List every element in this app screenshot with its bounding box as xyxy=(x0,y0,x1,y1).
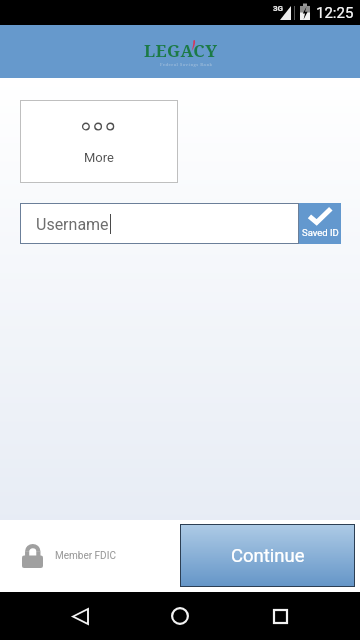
staticText: 3G xyxy=(273,4,284,13)
staticText: Saved ID xyxy=(302,227,339,238)
button[interactable]: Home xyxy=(150,592,210,640)
staticText: Username xyxy=(36,215,109,234)
button[interactable]: Username xyxy=(20,203,299,244)
staticText: 12:25 xyxy=(316,4,354,22)
button[interactable]: More xyxy=(20,100,178,183)
staticText: LEGACY xyxy=(144,39,218,62)
staticText: Continue xyxy=(231,545,305,567)
staticText: Federal Savings Bank xyxy=(160,62,213,68)
button[interactable]: Continue xyxy=(180,524,355,587)
staticText: More xyxy=(84,150,114,165)
button[interactable]: Saved ID xyxy=(299,203,341,244)
staticText: Member FDIC xyxy=(55,550,116,562)
button[interactable]: Recent apps xyxy=(250,592,310,640)
button[interactable]: Back xyxy=(50,592,110,640)
